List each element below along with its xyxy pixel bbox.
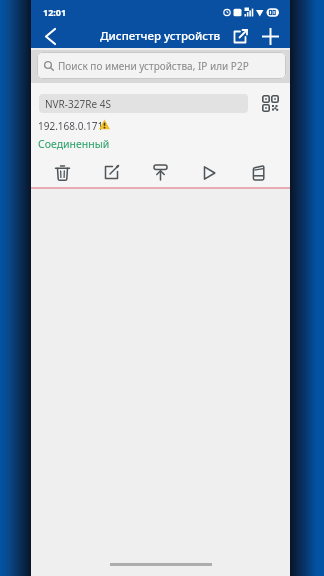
button[interactable] bbox=[185, 160, 234, 185]
staticText: Соединенный bbox=[38, 137, 110, 151]
button[interactable] bbox=[136, 160, 185, 185]
button[interactable] bbox=[259, 93, 281, 114]
staticText: Диспетчер устройств bbox=[100, 28, 221, 44]
staticText: 12:01 bbox=[43, 6, 67, 18]
staticText: NVR-327Re 4S bbox=[45, 97, 111, 111]
button[interactable] bbox=[39, 24, 61, 48]
staticText: Поиск по имени устройства, IP или P2P bbox=[58, 59, 249, 73]
staticText: 192.168.0.171 bbox=[38, 119, 104, 133]
button[interactable] bbox=[38, 160, 87, 185]
button[interactable] bbox=[87, 160, 136, 185]
button[interactable] bbox=[228, 25, 252, 47]
button[interactable]: NVR-327Re 4S bbox=[39, 94, 248, 113]
button[interactable] bbox=[234, 160, 283, 185]
button[interactable] bbox=[257, 25, 283, 47]
button[interactable]: Поиск по имени устройства, IP или P2P bbox=[37, 52, 286, 79]
